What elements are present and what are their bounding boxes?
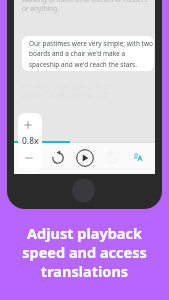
button[interactable]: [18, 113, 42, 170]
other: Decrease speed: [25, 157, 33, 159]
staticText: Adjust playback speed and access transla…: [22, 223, 147, 281]
other: Increase speed: [24, 121, 32, 129]
staticText: Our pastimes were very simple; with two …: [29, 39, 154, 69]
button[interactable]: Play: [74, 147, 96, 169]
button[interactable]: Replay 10 seconds: [48, 148, 68, 168]
staticText: 0.8x: [22, 135, 39, 146]
staticText: wanting to harm us or thieves or robbers…: [22, 0, 148, 13]
button[interactable]: Translate: [129, 148, 147, 166]
